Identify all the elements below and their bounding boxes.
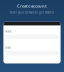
staticText: Name [5,30,12,33]
staticText: Email [5,46,11,49]
staticText: Enter your details to get started [10,11,54,14]
staticText: Create account [17,3,47,8]
